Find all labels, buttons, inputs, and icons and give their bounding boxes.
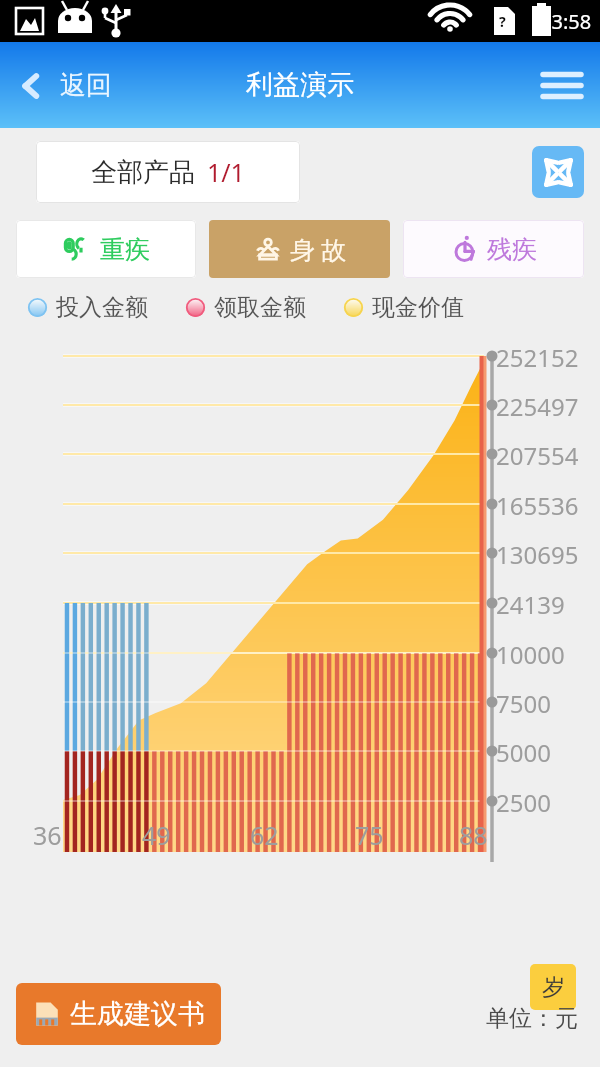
button[interactable]: 残疾 xyxy=(403,220,584,278)
staticText: 5000 xyxy=(496,736,551,769)
staticText: 残疾 xyxy=(487,234,537,265)
button[interactable]: 生成建议书 xyxy=(16,983,221,1045)
staticText: 13:58 xyxy=(540,8,592,35)
button[interactable]: 身 故 xyxy=(209,220,390,278)
button[interactable]: Menu xyxy=(536,59,588,111)
staticText: 165536 xyxy=(496,489,579,522)
button[interactable]: 全部产品 xyxy=(36,141,300,203)
staticText: 单位：元 xyxy=(486,1004,578,1033)
staticText: 207554 xyxy=(496,439,579,472)
staticText: 利益演示 xyxy=(246,68,354,102)
staticText: 现金价值 xyxy=(372,293,464,322)
staticText: 生成建议书 xyxy=(70,997,205,1031)
staticText: 130695 xyxy=(496,538,579,571)
staticText: 7500 xyxy=(496,687,551,720)
staticText: 10000 xyxy=(496,638,565,671)
staticText: 252152 xyxy=(496,341,579,374)
staticText: 返回 xyxy=(60,69,112,102)
staticText: 重疾 xyxy=(100,234,150,265)
staticText: 36 xyxy=(33,818,62,852)
staticText: 225497 xyxy=(496,390,579,423)
button[interactable]: 现金价值 xyxy=(344,293,464,322)
staticText: 身 故 xyxy=(290,232,347,266)
staticText: 2500 xyxy=(496,786,551,819)
button[interactable]: 返回 xyxy=(8,59,122,112)
button[interactable]: 岁 xyxy=(530,964,576,1010)
staticText: 领取金额 xyxy=(214,293,306,322)
staticText: 投入金额 xyxy=(56,293,148,322)
staticText: 24139 xyxy=(496,588,565,621)
button[interactable]: Fullscreen xyxy=(532,146,584,198)
staticText: 62 xyxy=(250,818,279,852)
button[interactable]: 重疾 xyxy=(16,220,196,278)
staticText: 全部产品 xyxy=(91,156,195,189)
staticText: 1/1 xyxy=(207,155,245,189)
staticText: 88 xyxy=(459,818,488,852)
staticText: 75 xyxy=(355,818,384,852)
staticText: ? xyxy=(499,12,506,31)
button[interactable]: 投入金额 xyxy=(28,293,148,322)
staticText: 49 xyxy=(142,818,171,852)
staticText: 岁 xyxy=(542,973,565,1002)
button[interactable]: 领取金额 xyxy=(186,293,306,322)
